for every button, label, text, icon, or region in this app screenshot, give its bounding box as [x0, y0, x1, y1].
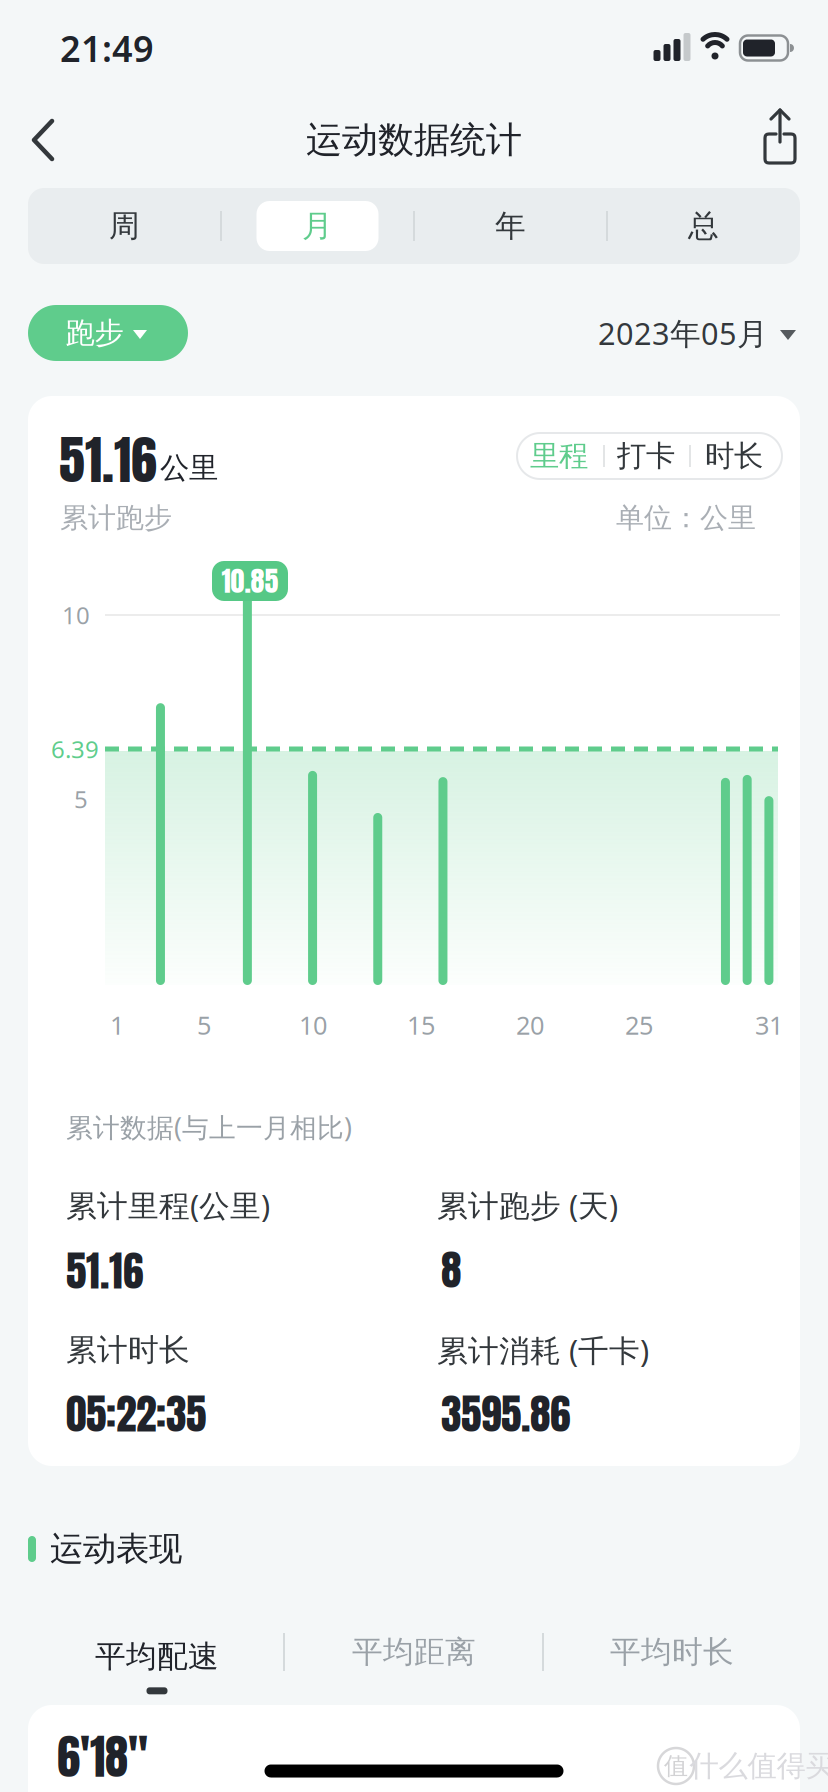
staticText: 2023年05月 [598, 313, 768, 353]
staticText: 累计跑步 [60, 501, 172, 535]
button[interactable]: Share [756, 104, 804, 168]
staticText: 运动数据统计 [306, 118, 522, 162]
staticText: 年 [495, 207, 526, 245]
staticText: 15 [407, 1008, 435, 1042]
staticText: 值 [664, 1751, 688, 1781]
button[interactable]: 里程 [517, 433, 601, 479]
staticText: 累计时长 [66, 1331, 190, 1369]
staticText: 3595.86 [441, 1383, 570, 1445]
staticText: 8 [441, 1239, 461, 1301]
button[interactable]: 平均距离 [314, 1622, 514, 1682]
staticText: 31 [755, 1008, 783, 1042]
staticText: 累计数据(与上一月相比) [66, 1109, 352, 1145]
button[interactable]: 平均时长 [572, 1622, 772, 1682]
button[interactable]: 月 [256, 201, 378, 251]
staticText: 51.16 [59, 421, 157, 499]
button[interactable]: 年 [435, 191, 585, 261]
staticText: 5 [74, 783, 88, 815]
staticText: 累计跑步 (天) [437, 1185, 618, 1225]
staticText: 25 [625, 1008, 653, 1042]
staticText: 周 [109, 207, 140, 245]
button[interactable]: 2023年05月 [615, 305, 800, 361]
staticText: 什么值得买 [689, 1748, 828, 1784]
staticText: 6'18" [57, 1722, 148, 1792]
staticText: 10 [299, 1008, 327, 1042]
staticText: 公里 [160, 450, 218, 486]
staticText: 21:49 [60, 24, 154, 72]
staticText: 累计消耗 (千卡) [437, 1330, 649, 1370]
button[interactable]: 周 [49, 191, 199, 261]
staticText: 平均配速 [95, 1638, 219, 1675]
staticText: 6.39 [51, 733, 99, 765]
button[interactable]: 打卡 [604, 433, 688, 479]
staticText: 跑步 [65, 315, 123, 351]
button[interactable]: 跑步 [28, 305, 188, 361]
staticText: 10 [62, 599, 90, 631]
staticText: 运动表现 [50, 1528, 182, 1569]
staticText: 05:22:35 [66, 1383, 206, 1445]
staticText: 打卡 [617, 438, 675, 474]
button[interactable]: 总 [628, 191, 778, 261]
staticText: 20 [516, 1008, 544, 1042]
staticText: 单位：公里 [616, 501, 756, 535]
staticText: 里程 [530, 438, 588, 474]
staticText: 月 [302, 207, 333, 245]
staticText: 1 [110, 1008, 124, 1042]
staticText: 51.16 [66, 1240, 143, 1302]
staticText: 5 [197, 1008, 211, 1042]
button[interactable]: Back [22, 112, 66, 168]
button[interactable]: 平均配速 [95, 1638, 219, 1694]
staticText: 时长 [705, 438, 763, 474]
staticText: 10.85 [221, 560, 278, 602]
staticText: 累计里程(公里) [66, 1185, 270, 1225]
staticText: 平均距离 [352, 1633, 476, 1671]
staticText: 平均时长 [610, 1633, 734, 1671]
button[interactable]: 时长 [692, 433, 776, 479]
staticText: 总 [688, 207, 719, 245]
